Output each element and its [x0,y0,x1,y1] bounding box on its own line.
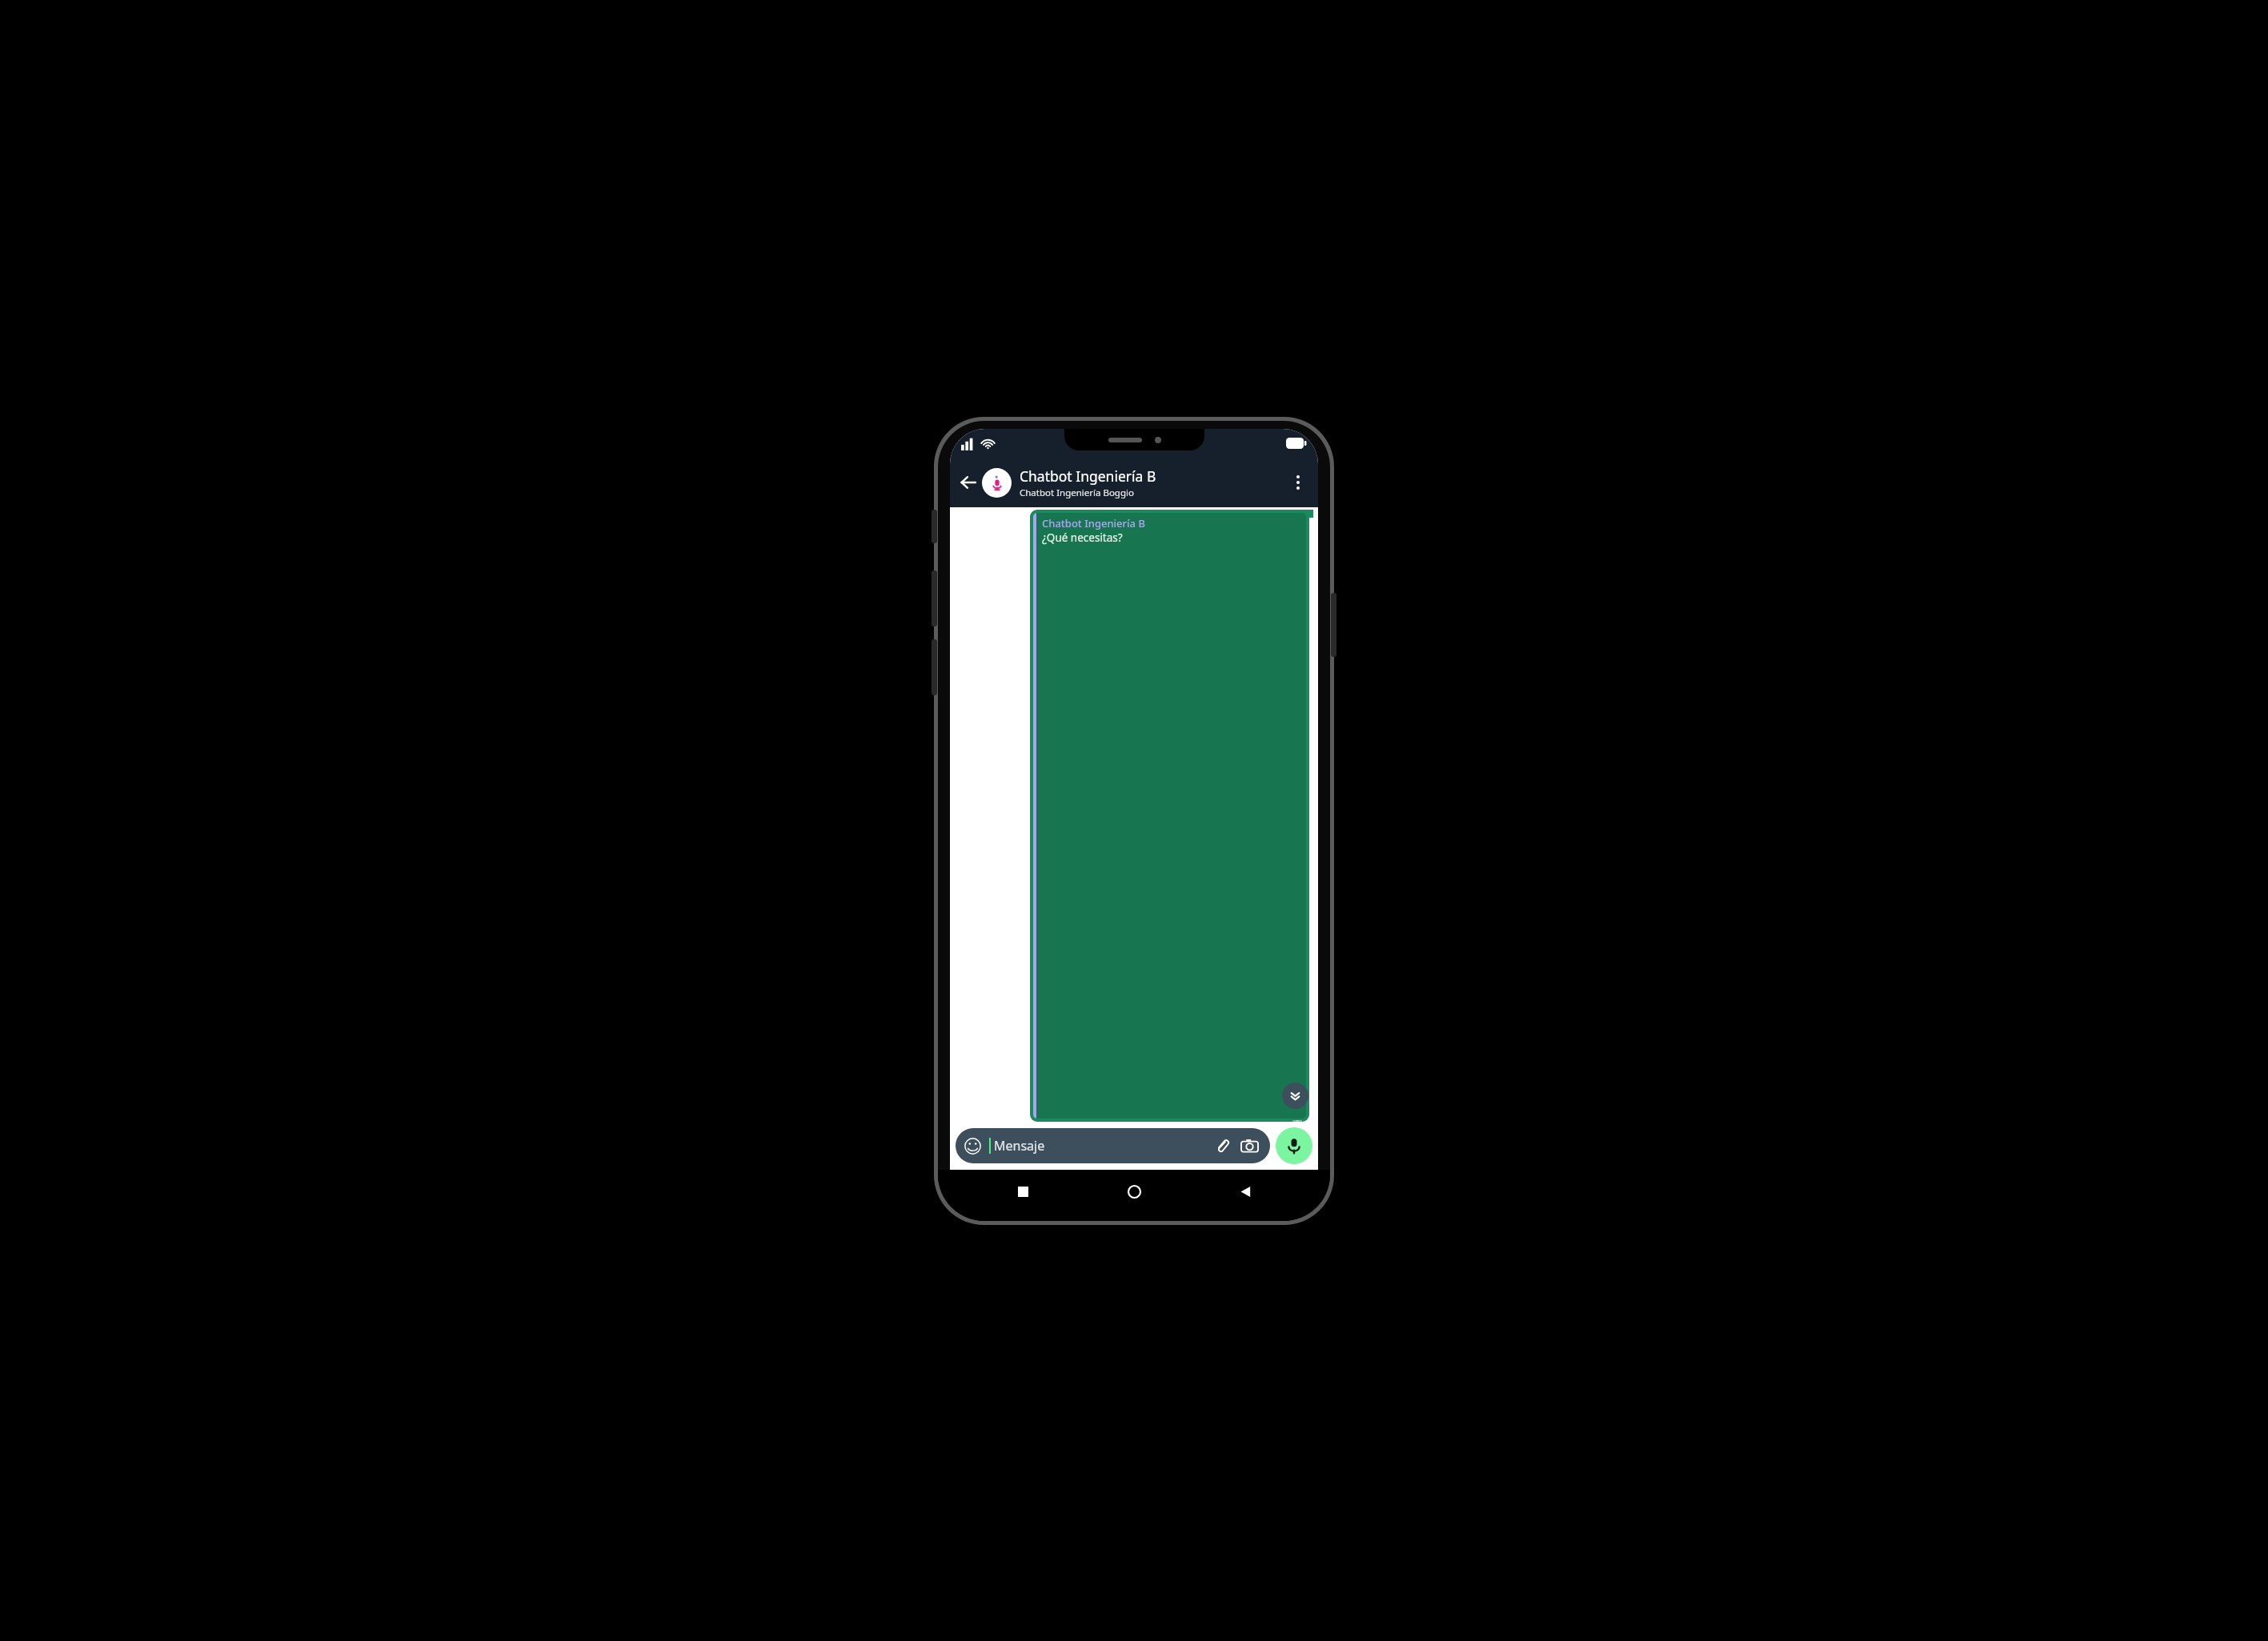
button[interactable] [982,468,1012,498]
button[interactable]: Mensaje [956,1128,1270,1163]
button[interactable]: Scroll to bottom [1282,1083,1308,1109]
button[interactable]: Voice message [1276,1127,1312,1164]
button[interactable]: Chatbot Ingeniería B [1020,466,1286,499]
staticText: ¿Qué necesitas? [1042,530,1123,545]
button[interactable]: Camera [1237,1134,1261,1158]
button[interactable]: Chatbot Ingeniería B [1030,510,1309,1122]
button[interactable]: Home [1124,1181,1144,1202]
button[interactable]: More options [1286,470,1310,494]
button[interactable]: Back [1235,1181,1256,1202]
staticText: Chatbot Ingeniería Boggio [1020,486,1134,499]
staticText: Mensaje [994,1137,1045,1155]
staticText: Chatbot Ingeniería B [1020,466,1156,486]
button[interactable]: Attach [1210,1134,1234,1158]
button[interactable]: Back [956,470,980,494]
staticText: Chatbot Ingeniería B [1042,516,1145,530]
button[interactable]: Recents [1012,1181,1033,1202]
